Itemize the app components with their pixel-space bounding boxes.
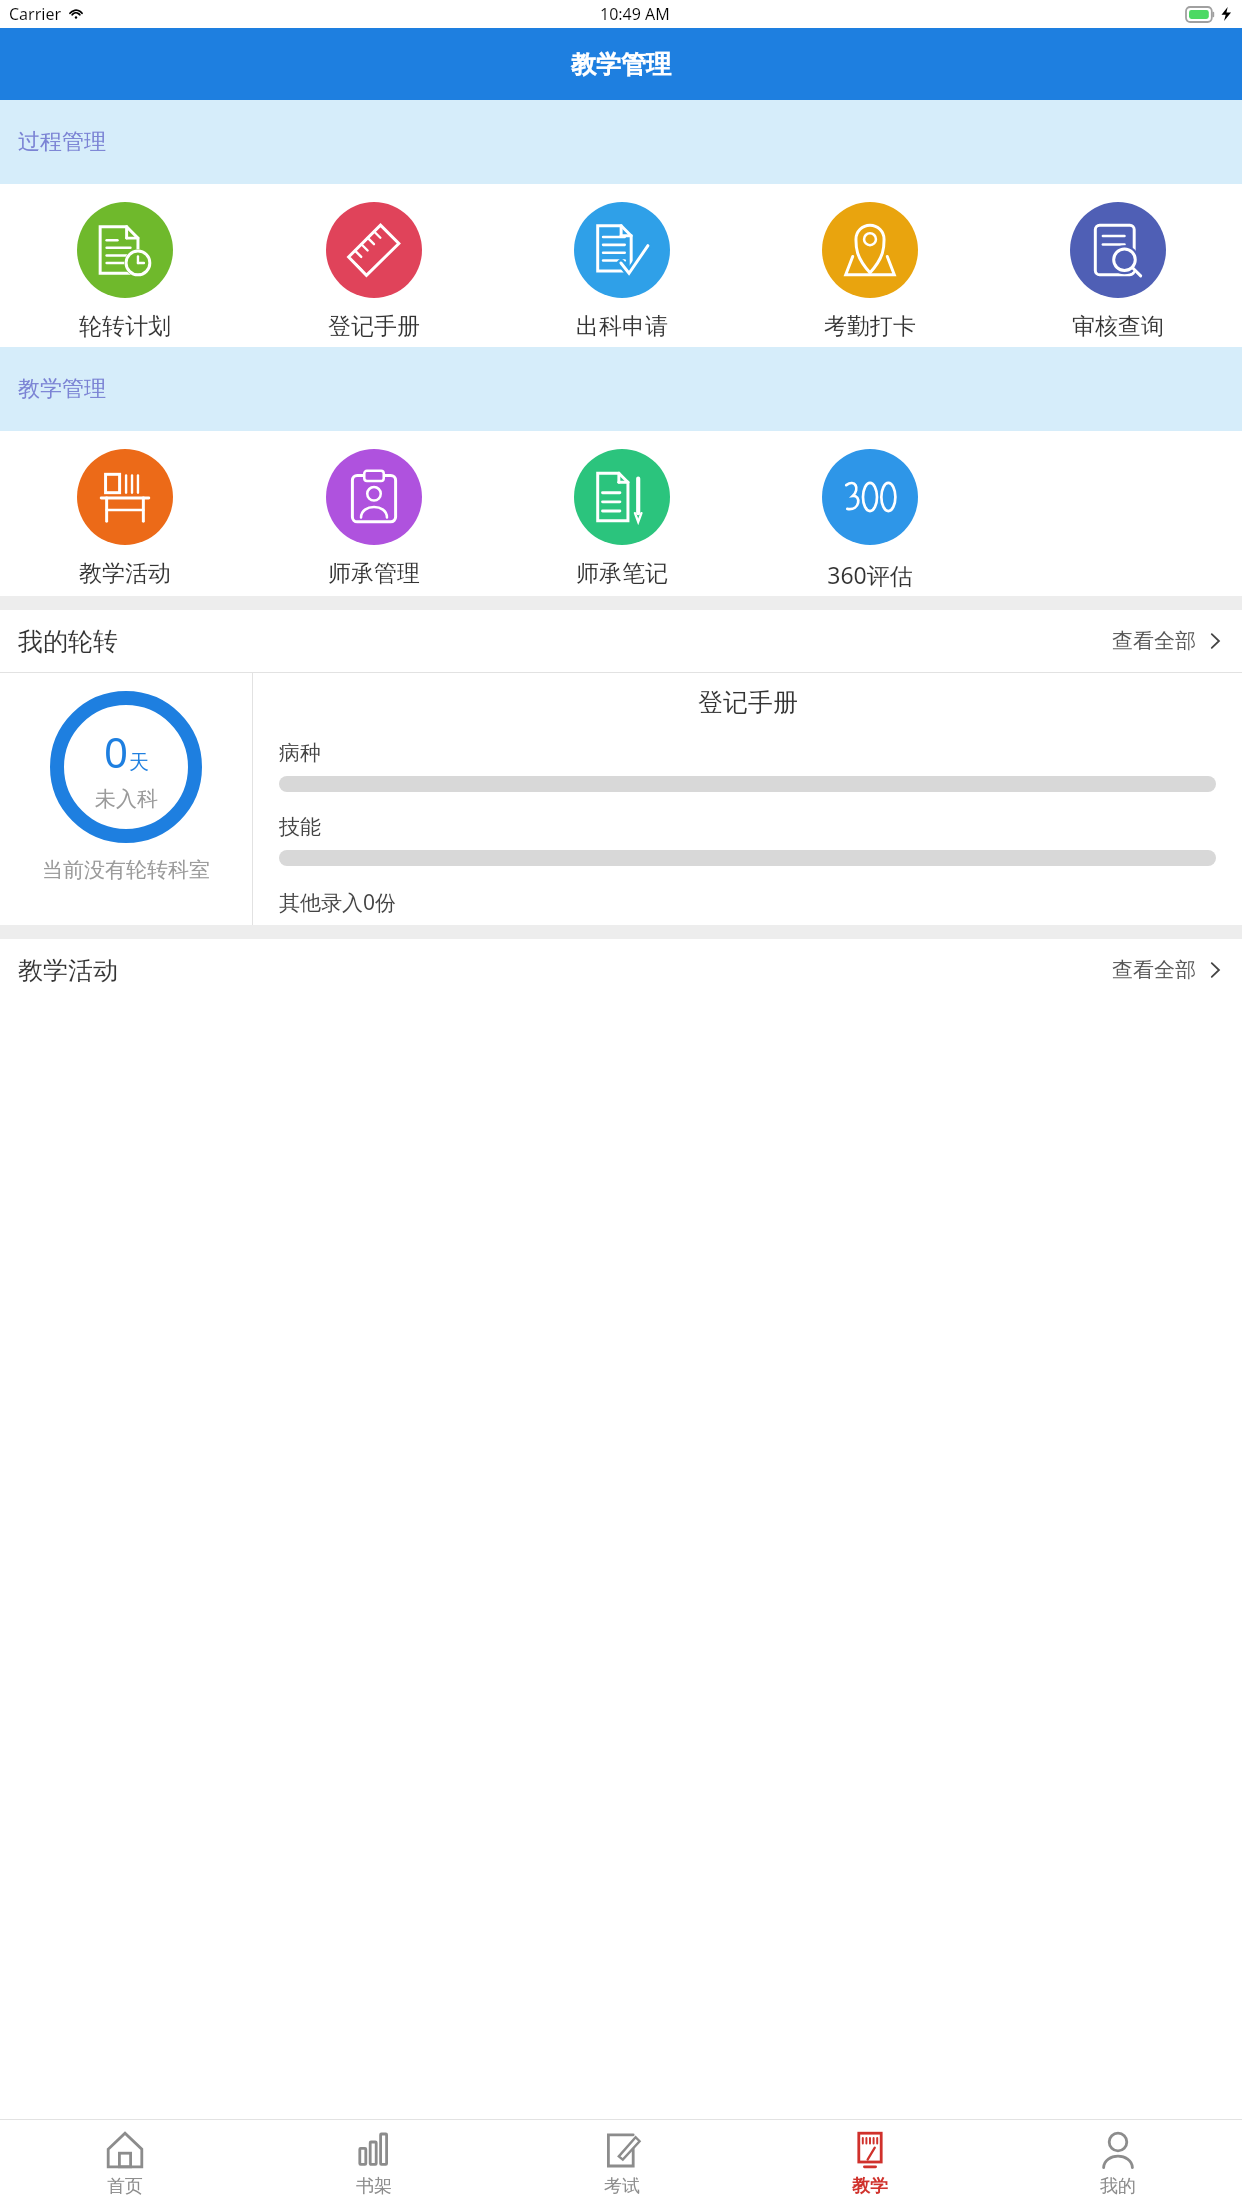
staticText: 出科申请 <box>576 312 668 341</box>
staticText: 轮转计划 <box>79 312 171 341</box>
staticText: 教学管理 <box>571 49 671 80</box>
staticText: 未入科 <box>95 786 158 812</box>
button[interactable]: 考试 <box>498 2120 746 2208</box>
staticText: 审核查询 <box>1072 312 1164 341</box>
staticText: 10:49 AM <box>600 3 670 25</box>
staticText: 教学活动 <box>18 955 118 986</box>
staticText: 病种 <box>279 740 321 766</box>
staticText: 其他录入0份 <box>279 888 397 917</box>
staticText: 当前没有轮转科室 <box>42 857 210 883</box>
staticText: 过程管理 <box>18 128 106 156</box>
button[interactable]: 我的轮转 <box>0 610 1242 672</box>
staticText: 0 <box>104 723 129 780</box>
button[interactable]: 登记手册 <box>249 184 498 347</box>
staticText: 考勤打卡 <box>824 312 916 341</box>
button[interactable]: 0 <box>0 673 252 925</box>
button[interactable]: 360评估 <box>746 431 994 596</box>
staticText: 天 <box>129 750 149 775</box>
staticText: 教学 <box>852 2175 888 2198</box>
staticText: 查看全部 <box>1112 957 1196 983</box>
button[interactable]: 出科申请 <box>498 184 746 347</box>
button[interactable]: 教学活动 <box>0 939 1242 1001</box>
staticText: 首页 <box>107 2175 143 2198</box>
staticText: 考试 <box>604 2175 640 2198</box>
staticText: 我的轮转 <box>18 626 118 657</box>
button[interactable]: 师承管理 <box>249 431 498 594</box>
staticText: 书架 <box>356 2175 392 2198</box>
other: 查看全部 <box>1206 632 1224 650</box>
button[interactable]: 登记手册 <box>253 673 1242 925</box>
staticText: 我的 <box>1100 2175 1136 2198</box>
button[interactable]: 考勤打卡 <box>746 184 994 347</box>
staticText: 师承管理 <box>328 559 420 588</box>
staticText: 技能 <box>279 814 321 840</box>
staticText: 教学管理 <box>18 375 106 403</box>
button[interactable]: 轮转计划 <box>0 184 249 347</box>
button[interactable]: 师承笔记 <box>498 431 746 594</box>
button[interactable]: 我的 <box>994 2120 1242 2208</box>
button[interactable]: 教学 <box>746 2120 994 2208</box>
staticText: 登记手册 <box>698 687 798 718</box>
staticText: Carrier <box>9 3 62 25</box>
button[interactable]: 教学活动 <box>0 431 249 594</box>
staticText: 查看全部 <box>1112 628 1196 654</box>
other: 查看全部教学活动 <box>1206 961 1224 979</box>
staticText: 360评估 <box>827 559 913 590</box>
button[interactable]: 审核查询 <box>994 184 1242 347</box>
staticText: 教学活动 <box>79 559 171 588</box>
staticText: 师承笔记 <box>576 559 668 588</box>
button[interactable]: 书架 <box>249 2120 498 2208</box>
button[interactable]: 首页 <box>0 2120 249 2208</box>
staticText: 登记手册 <box>328 312 420 341</box>
